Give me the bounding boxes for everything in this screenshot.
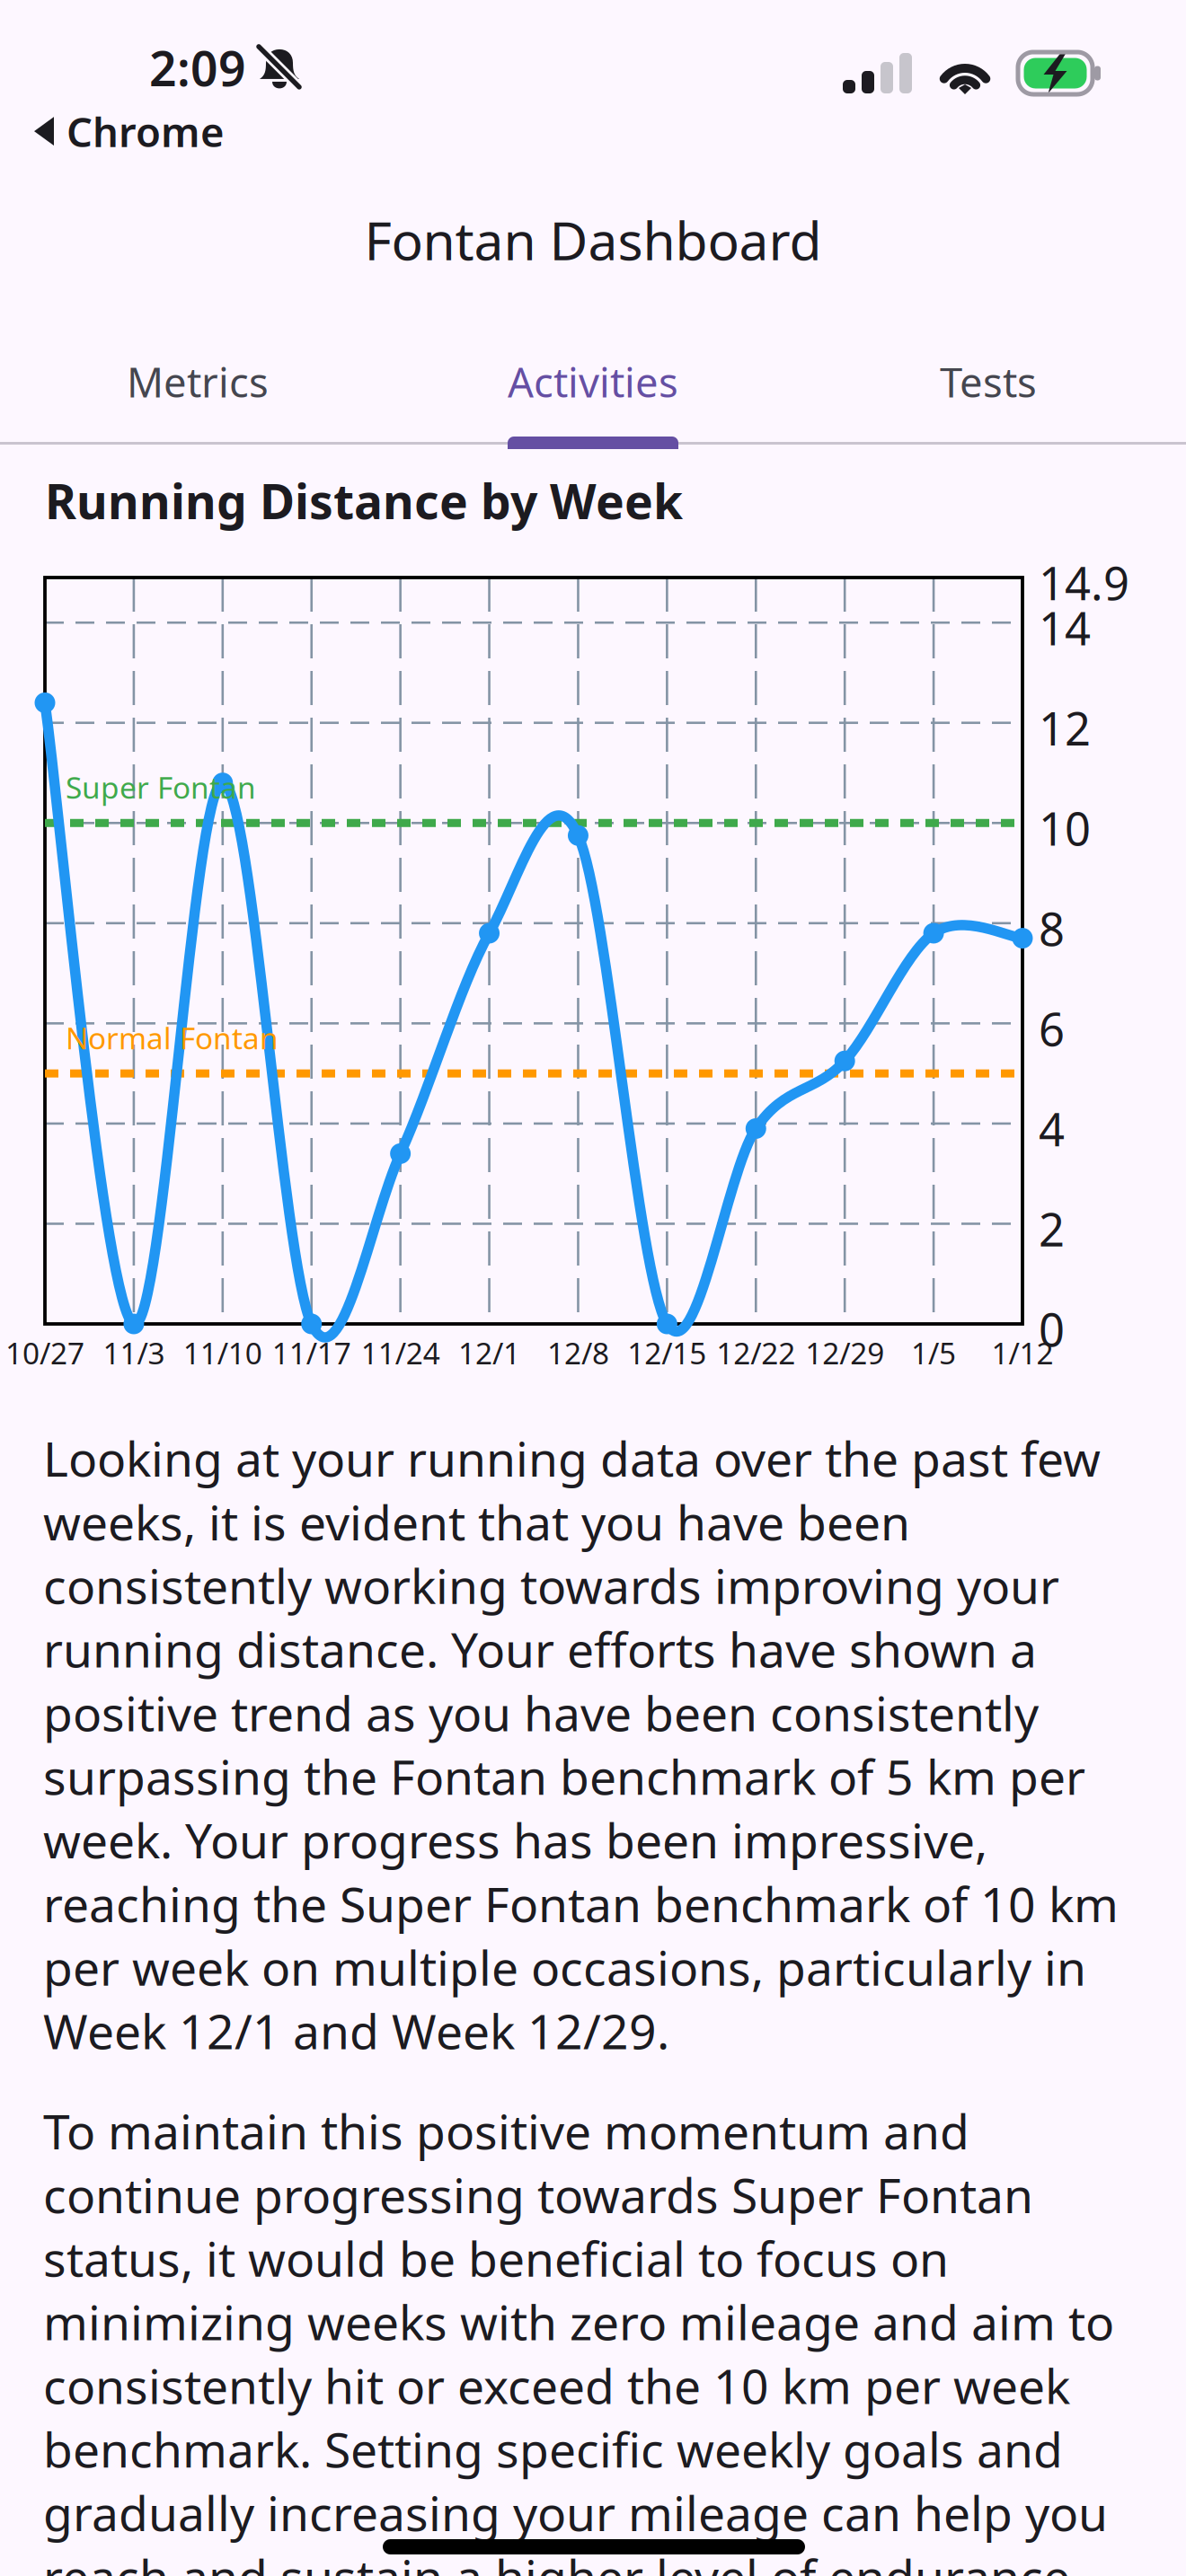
staticText: 12/8 [547, 1333, 609, 1373]
staticText: 8 [1039, 898, 1065, 958]
staticText: 11/24 [361, 1333, 440, 1373]
staticText: 12/1 [458, 1333, 520, 1373]
staticText: Metrics [127, 355, 269, 409]
staticText: 2 [1039, 1199, 1065, 1259]
staticText: 11/3 [103, 1333, 165, 1373]
staticText: 12/22 [716, 1333, 795, 1373]
staticText: 12/29 [805, 1333, 884, 1373]
staticText: Normal Fontan [66, 1018, 279, 1058]
staticText: 1/12 [991, 1333, 1053, 1373]
staticText: 6 [1039, 998, 1065, 1059]
staticText: 12 [1039, 698, 1091, 758]
staticText: 14 [1039, 597, 1091, 658]
staticText: 4 [1039, 1098, 1065, 1159]
staticText: 14.9 [1039, 552, 1129, 613]
staticText: 2:09 [149, 36, 246, 100]
staticText: Looking at your running data over the pa… [43, 1426, 1119, 2062]
staticText: Tests [940, 355, 1037, 409]
button[interactable]: Activities [395, 332, 791, 431]
staticText: To maintain this positive momentum and c… [43, 2099, 1114, 2576]
staticText: 11/17 [272, 1333, 351, 1373]
staticText: 11/10 [183, 1333, 262, 1373]
staticText: 12/15 [628, 1333, 707, 1373]
staticText: Running Distance by Week [45, 469, 683, 532]
staticText: 1/5 [911, 1333, 956, 1373]
staticText: Activities [508, 355, 678, 409]
staticText: Super Fontan [66, 767, 256, 807]
staticText: Fontan Dashboard [364, 205, 822, 275]
button[interactable]: Chrome [25, 97, 234, 165]
staticText: 10 [1039, 798, 1091, 858]
staticText: 0 [1039, 1299, 1065, 1359]
staticText: 10/27 [5, 1333, 84, 1373]
button[interactable]: Tests [791, 332, 1186, 431]
staticText: Chrome [66, 104, 225, 158]
button[interactable]: Metrics [0, 332, 395, 431]
